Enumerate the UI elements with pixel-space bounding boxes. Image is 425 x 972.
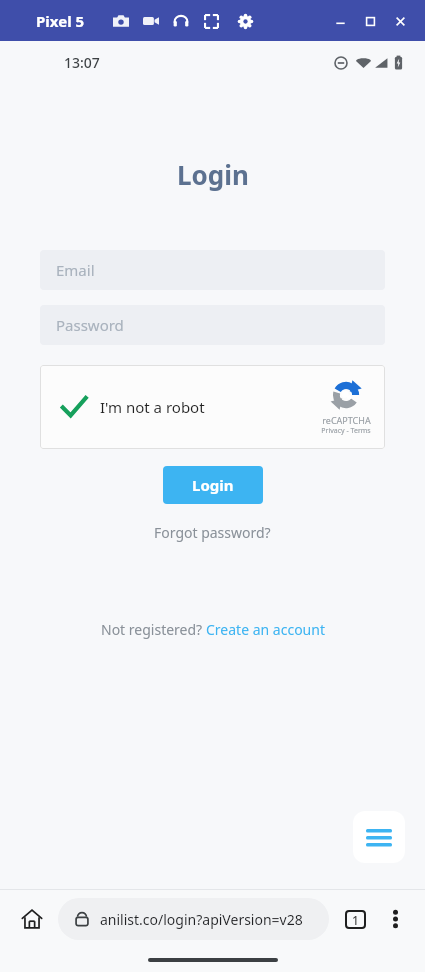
staticText: 13:07 <box>64 53 100 72</box>
button[interactable]: anilist.co/login?apiVersion=v28 <box>58 898 329 940</box>
button[interactable]: Email <box>40 250 385 290</box>
button[interactable]: Create an account <box>206 620 325 639</box>
staticText: 1 <box>352 912 359 928</box>
button[interactable]: Login <box>163 466 263 504</box>
button[interactable]: Menu <box>353 811 405 863</box>
staticText: Privacy - Terms <box>321 426 371 436</box>
button[interactable]: Record screen <box>140 10 162 32</box>
staticText: Create an account <box>206 620 325 639</box>
staticText: Login <box>177 157 249 192</box>
button[interactable]: Forgot password? <box>146 519 279 546</box>
button[interactable]: Tabs <box>335 899 375 939</box>
button[interactable]: Screenshot <box>110 10 132 32</box>
staticText: anilist.co/login?apiVersion=v28 <box>100 910 303 929</box>
button[interactable]: Audio <box>170 10 192 32</box>
button[interactable]: Minimize <box>325 6 355 36</box>
staticText: I'm not a robot <box>100 397 205 417</box>
button[interactable]: Fullscreen <box>200 10 222 32</box>
staticText: Email <box>56 260 95 280</box>
staticText: Login <box>192 475 234 495</box>
staticText: Password <box>56 315 124 335</box>
button[interactable]: Settings <box>234 10 256 32</box>
staticText: Not registered? <box>101 620 206 639</box>
button[interactable]: More options <box>375 899 415 939</box>
button[interactable]: Password <box>40 305 385 345</box>
staticText: Forgot password? <box>154 523 271 542</box>
staticText: reCAPTCHA <box>322 414 371 426</box>
button[interactable]: I'm not a robot <box>40 365 385 449</box>
staticText: Pixel 5 <box>36 11 85 31</box>
button[interactable]: Close <box>385 6 415 36</box>
button[interactable]: Home <box>10 897 54 941</box>
button[interactable]: Maximize <box>355 6 385 36</box>
